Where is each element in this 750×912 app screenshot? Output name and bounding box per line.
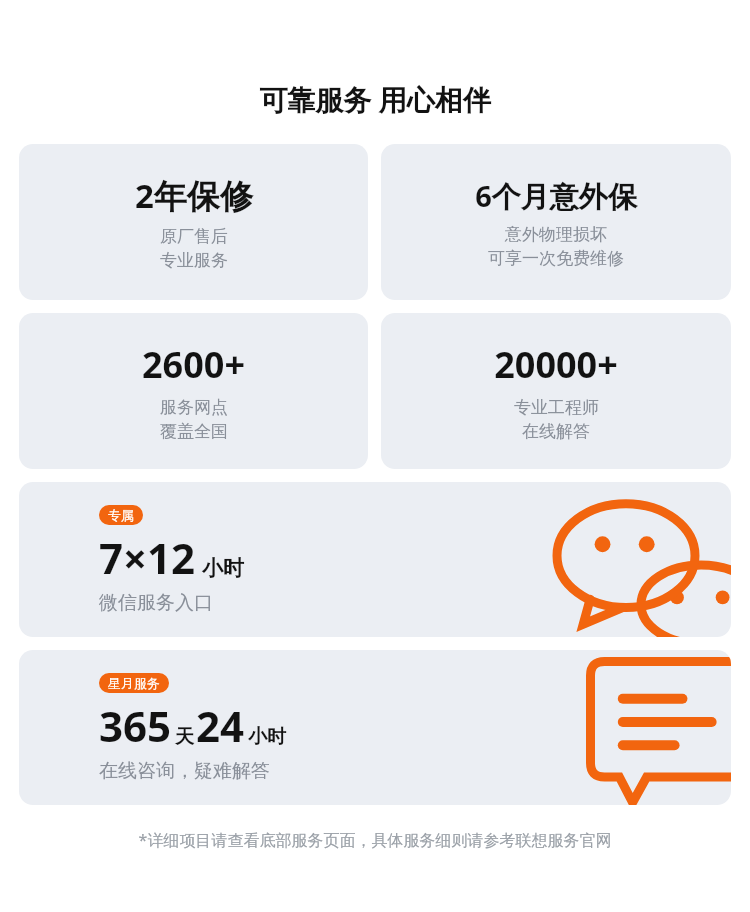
button[interactable]: 2年保修 (19, 144, 368, 300)
staticText: 覆盖全国 (160, 421, 228, 442)
button[interactable]: 星月服务 (99, 673, 169, 693)
other: 微信服务入口 (553, 496, 731, 637)
staticText: 7×12 (99, 529, 196, 586)
staticText: 2600+ (142, 340, 245, 389)
staticText: 可靠服务 用心相伴 (19, 80, 731, 118)
staticText: 2年保修 (135, 173, 253, 218)
other: 在线咨询 (586, 657, 731, 805)
staticText: 意外物理损坏 (505, 224, 607, 245)
staticText: 星月服务 (108, 675, 160, 691)
staticText: 365 (99, 697, 172, 754)
button[interactable]: 微信服务入口 (19, 482, 731, 637)
button[interactable]: 20000+ (381, 313, 731, 469)
staticText: 天 (175, 725, 194, 749)
staticText: *详细项目请查看底部服务页面，具体服务细则请参考联想服务官网 (19, 829, 731, 851)
staticText: 专属 (108, 507, 134, 523)
staticText: 可享一次免费维修 (488, 248, 624, 269)
staticText: 在线解答 (522, 421, 590, 442)
staticText: 微信服务入口 (99, 591, 213, 615)
staticText: 6个月意外保 (475, 176, 637, 216)
staticText: 专业工程师 (514, 397, 599, 418)
staticText: 小时 (202, 555, 244, 581)
staticText: 专业服务 (160, 250, 228, 271)
staticText: 在线咨询，疑难解答 (99, 759, 270, 783)
staticText: 服务网点 (160, 397, 228, 418)
staticText: 小时 (248, 725, 286, 749)
staticText: 20000+ (494, 340, 618, 389)
staticText: 原厂售后 (160, 226, 228, 247)
button[interactable]: 在线咨询 (19, 650, 731, 805)
button[interactable]: 2600+ (19, 313, 368, 469)
staticText: 24 (196, 697, 245, 754)
button[interactable]: 专属 (99, 505, 143, 525)
button[interactable]: 6个月意外保 (381, 144, 731, 300)
